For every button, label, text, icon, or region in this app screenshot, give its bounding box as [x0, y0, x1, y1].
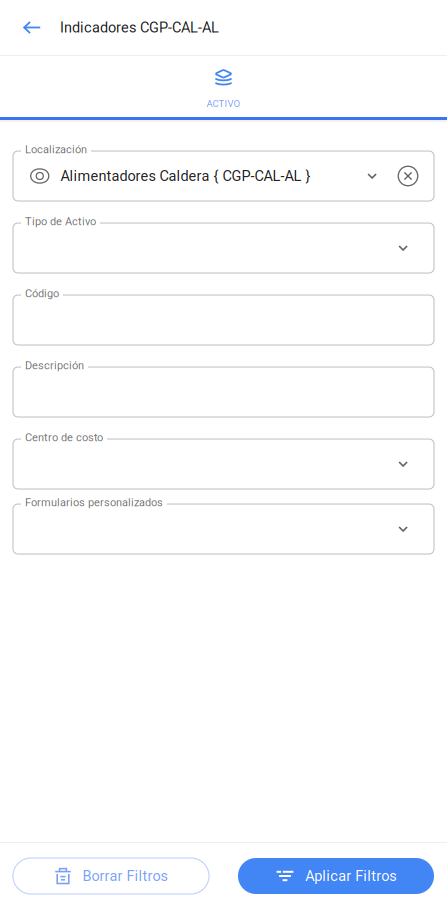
button[interactable]: Back: [0, 0, 41, 55]
staticText: Descripción: [25, 359, 84, 372]
button[interactable]: Aplicar Filtros: [238, 858, 434, 894]
staticText: Código: [25, 287, 59, 300]
staticText: Borrar Filtros: [83, 867, 168, 884]
staticText: Alimentadores Caldera { CGP-CAL-AL }: [60, 167, 310, 184]
staticText: Formularios personalizados: [25, 496, 163, 509]
button[interactable]: ACTIVO: [0, 56, 447, 117]
staticText: Aplicar Filtros: [305, 867, 396, 884]
staticText: Centro de costo: [25, 431, 103, 444]
staticText: Localización: [25, 143, 87, 156]
staticText: Tipo de Activo: [25, 215, 96, 228]
staticText: ACTIVO: [206, 98, 240, 109]
staticText: Indicadores CGP-CAL-AL: [60, 19, 219, 36]
button[interactable]: Borrar Filtros: [13, 858, 209, 894]
